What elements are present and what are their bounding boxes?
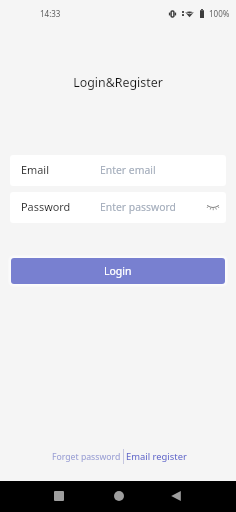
button[interactable]: Password (10, 192, 226, 223)
staticText: Login&Register (0, 74, 236, 91)
button[interactable]: Email (10, 155, 226, 186)
staticText: Enter password (100, 200, 176, 214)
button[interactable]: Back (160, 480, 191, 511)
button[interactable]: Login (11, 258, 225, 284)
staticText: Enter email (100, 163, 156, 177)
staticText: 14:33 (40, 8, 61, 19)
button[interactable]: Recents (43, 480, 74, 511)
button[interactable]: Show password (204, 199, 222, 217)
staticText: Login (104, 264, 132, 278)
staticText: Email register (126, 450, 187, 463)
staticText: Password (21, 199, 71, 214)
staticText: Forget password (52, 451, 121, 463)
staticText: 100% (209, 8, 230, 19)
staticText: Email (21, 162, 49, 177)
button[interactable]: Home (103, 480, 134, 511)
button[interactable]: Email register (124, 448, 190, 465)
button[interactable]: Forget password (49, 449, 123, 465)
